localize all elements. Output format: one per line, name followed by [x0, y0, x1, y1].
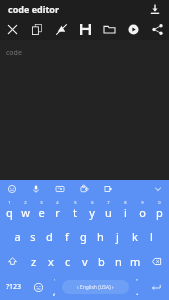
- staticText: ': [54, 278, 56, 285]
- staticText: 3: [40, 200, 43, 205]
- staticText: code: [6, 48, 22, 58]
- button[interactable]: 4: [49, 197, 66, 223]
- button[interactable]: 9: [134, 197, 151, 223]
- staticText: 2: [24, 200, 27, 205]
- button[interactable]: Backspace: [144, 249, 169, 274]
- button[interactable]: ‹ English (USA) ›: [62, 280, 129, 294]
- button[interactable]: z: [25, 249, 42, 274]
- staticText: ": [136, 278, 139, 285]
- staticText: q: [6, 205, 13, 220]
- staticText: h: [97, 229, 104, 244]
- button[interactable]: d: [41, 223, 58, 249]
- button[interactable]: GIF: [48, 180, 72, 197]
- staticText: b: [98, 254, 105, 269]
- button[interactable]: 8: [117, 197, 134, 223]
- staticText: i: [124, 205, 127, 220]
- button[interactable]: l: [143, 223, 160, 249]
- staticText: 4: [56, 200, 59, 205]
- button[interactable]: s: [25, 223, 41, 249]
- staticText: y: [89, 205, 95, 220]
- staticText: code editor: [8, 3, 59, 15]
- staticText: 9: [141, 200, 144, 205]
- button[interactable]: Run: [121, 18, 145, 40]
- button[interactable]: f: [58, 223, 75, 249]
- staticText: d: [46, 229, 53, 244]
- button[interactable]: 6: [83, 197, 100, 223]
- button[interactable]: 1: [1, 197, 17, 223]
- button[interactable]: m: [127, 249, 144, 274]
- button[interactable]: 2: [17, 197, 33, 223]
- button[interactable]: x: [42, 249, 59, 274]
- staticText: 7: [107, 200, 110, 205]
- staticText: g: [80, 229, 87, 244]
- button[interactable]: Voice input: [24, 180, 48, 197]
- button[interactable]: Enter: [143, 274, 169, 300]
- button[interactable]: j: [109, 223, 126, 249]
- button[interactable]: Stickers: [72, 180, 96, 197]
- staticText: ?123: [6, 282, 22, 292]
- button[interactable]: Save: [73, 18, 97, 40]
- button[interactable]: c: [59, 249, 76, 274]
- staticText: o: [139, 205, 146, 220]
- staticText: ,: [53, 285, 56, 297]
- button[interactable]: Shift: [0, 249, 25, 274]
- staticText: 8: [124, 200, 127, 205]
- button[interactable]: Share: [145, 18, 169, 40]
- button[interactable]: 5: [66, 197, 83, 223]
- staticText: k: [132, 229, 138, 244]
- staticText: n: [115, 254, 122, 269]
- staticText: w: [21, 205, 30, 220]
- button[interactable]: Collapse: [147, 180, 169, 197]
- button[interactable]: a: [9, 223, 25, 249]
- button[interactable]: Folder: [97, 18, 121, 40]
- button[interactable]: 0: [151, 197, 168, 223]
- staticText: x: [48, 254, 54, 269]
- button[interactable]: 3: [33, 197, 49, 223]
- button[interactable]: Close: [0, 18, 25, 40]
- staticText: 5: [74, 200, 77, 205]
- button[interactable]: Clipboard: [96, 180, 120, 197]
- staticText: c: [65, 254, 71, 269]
- button[interactable]: Format: [49, 18, 73, 40]
- button[interactable]: Emoji: [0, 180, 24, 197]
- button[interactable]: Download: [147, 1, 163, 17]
- staticText: u: [105, 205, 112, 220]
- staticText: l: [150, 229, 153, 244]
- staticText: 6: [91, 200, 94, 205]
- button[interactable]: 7: [100, 197, 117, 223]
- staticText: .: [136, 285, 139, 297]
- button[interactable]: n: [110, 249, 127, 274]
- staticText: 1: [8, 200, 11, 205]
- button[interactable]: ?123: [0, 274, 28, 300]
- staticText: e: [38, 205, 45, 220]
- staticText: a: [14, 229, 21, 244]
- staticText: j: [116, 229, 119, 244]
- button[interactable]: Emoji: [28, 274, 48, 300]
- button[interactable]: k: [126, 223, 143, 249]
- staticText: m: [130, 254, 141, 269]
- staticText: ‹ English (USA) ›: [77, 284, 114, 291]
- staticText: v: [82, 254, 88, 269]
- staticText: t: [73, 205, 77, 220]
- staticText: s: [30, 229, 36, 244]
- button[interactable]: v: [76, 249, 93, 274]
- staticText: p: [156, 205, 163, 220]
- staticText: f: [65, 229, 69, 244]
- button[interactable]: g: [75, 223, 92, 249]
- button[interactable]: b: [93, 249, 110, 274]
- button[interactable]: ': [48, 274, 60, 300]
- button[interactable]: Copy: [25, 18, 49, 40]
- button[interactable]: ": [131, 274, 143, 300]
- staticText: r: [55, 205, 60, 220]
- button[interactable]: h: [92, 223, 109, 249]
- staticText: 0: [158, 200, 161, 205]
- staticText: z: [31, 254, 37, 269]
